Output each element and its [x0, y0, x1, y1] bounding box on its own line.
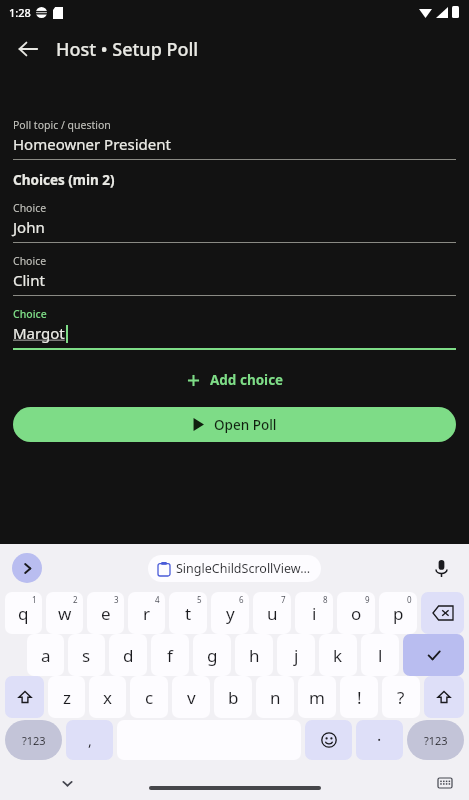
- staticText: ?123: [424, 733, 448, 748]
- button[interactable]: f: [151, 634, 189, 676]
- button[interactable]: Emoji: [305, 720, 352, 760]
- button[interactable]: l: [361, 634, 399, 676]
- staticText: Homeowner President: [13, 134, 171, 154]
- button[interactable]: r: [128, 592, 165, 634]
- button[interactable]: ?123: [5, 720, 62, 760]
- button[interactable]: e: [87, 592, 124, 634]
- staticText: Choice: [13, 254, 47, 268]
- button[interactable]: ?123: [407, 720, 464, 760]
- staticText: ,: [88, 731, 92, 750]
- button[interactable]: d: [109, 634, 147, 676]
- staticText: 6: [239, 594, 244, 605]
- staticText: h: [249, 644, 260, 667]
- staticText: l: [378, 644, 383, 667]
- button[interactable]: k: [319, 634, 357, 676]
- staticText: 1:28: [9, 5, 31, 20]
- button[interactable]: a: [27, 634, 64, 676]
- button[interactable]: s: [68, 634, 105, 676]
- button[interactable]: Voice input: [427, 554, 455, 582]
- staticText: John: [13, 217, 45, 237]
- button[interactable]: w: [46, 592, 83, 634]
- button[interactable]: !: [340, 676, 378, 718]
- staticText: Margot: [13, 323, 65, 343]
- staticText: p: [393, 602, 404, 625]
- button[interactable]: u: [253, 592, 291, 634]
- staticText: Open Poll: [214, 416, 277, 434]
- button[interactable]: m: [298, 676, 336, 718]
- button[interactable]: Open Poll: [13, 407, 456, 442]
- staticText: r: [143, 602, 151, 625]
- staticText: y: [226, 602, 235, 625]
- staticText: Clint: [13, 270, 45, 290]
- staticText: 0: [407, 594, 412, 605]
- staticText: q: [18, 602, 29, 625]
- staticText: Add choice: [210, 371, 284, 389]
- button[interactable]: ,: [66, 720, 113, 760]
- staticText: Host • Setup Poll: [56, 37, 199, 62]
- staticText: s: [82, 644, 91, 667]
- button[interactable]: h: [235, 634, 273, 676]
- button[interactable]: Backspace: [421, 592, 464, 634]
- staticText: i: [312, 602, 317, 625]
- staticText: ?: [397, 686, 405, 709]
- staticText: z: [63, 686, 71, 709]
- staticText: v: [187, 686, 196, 709]
- button[interactable]: o: [337, 592, 375, 634]
- button[interactable]: q: [5, 592, 42, 634]
- staticText: e: [101, 602, 111, 625]
- staticText: w: [58, 602, 72, 625]
- button[interactable]: v: [172, 676, 210, 718]
- staticText: !: [357, 686, 362, 709]
- staticText: 5: [197, 594, 202, 605]
- staticText: a: [41, 644, 51, 667]
- staticText: n: [270, 686, 281, 709]
- staticText: g: [207, 644, 218, 667]
- staticText: Choices (min 2): [13, 171, 115, 189]
- staticText: 8: [323, 594, 328, 605]
- staticText: ?123: [22, 733, 46, 748]
- button[interactable]: j: [277, 634, 315, 676]
- staticText: 1: [32, 594, 37, 605]
- staticText: 2: [73, 594, 78, 605]
- button[interactable]: i: [295, 592, 333, 634]
- button[interactable]: Shift: [5, 676, 44, 718]
- button[interactable]: x: [89, 676, 126, 718]
- button[interactable]: Shift: [424, 676, 464, 718]
- button[interactable]: b: [214, 676, 252, 718]
- staticText: o: [351, 602, 362, 625]
- button[interactable]: n: [256, 676, 294, 718]
- staticText: Choice: [13, 307, 47, 321]
- button[interactable]: z: [48, 676, 85, 718]
- staticText: b: [228, 686, 239, 709]
- button[interactable]: c: [130, 676, 168, 718]
- staticText: 4: [155, 594, 160, 605]
- button[interactable]: Add choice: [13, 363, 456, 397]
- staticText: ·: [377, 729, 382, 751]
- staticText: t: [185, 602, 192, 625]
- button[interactable]: ?: [382, 676, 420, 718]
- button[interactable]: Enter: [403, 634, 464, 676]
- staticText: SingleChildScrollView…: [176, 560, 311, 577]
- staticText: f: [167, 644, 173, 667]
- button[interactable]: Hide keyboard: [234, 770, 260, 796]
- staticText: 7: [281, 594, 286, 605]
- button[interactable]: ·: [356, 720, 403, 760]
- button[interactable]: p: [379, 592, 417, 634]
- staticText: Poll topic / question: [13, 118, 111, 132]
- staticText: Choice: [13, 201, 47, 215]
- button[interactable]: Back: [6, 27, 50, 71]
- staticText: x: [103, 686, 112, 709]
- button[interactable]: t: [169, 592, 207, 634]
- staticText: c: [145, 686, 154, 709]
- staticText: d: [123, 644, 134, 667]
- button[interactable]: Switch keyboard: [433, 771, 457, 795]
- button[interactable]: Expand suggestions: [12, 553, 42, 583]
- button[interactable]: SingleChildScrollView…: [158, 555, 311, 582]
- button[interactable]: g: [193, 634, 231, 676]
- button[interactable]: y: [211, 592, 249, 634]
- staticText: 9: [365, 594, 370, 605]
- staticText: m: [309, 686, 325, 709]
- staticText: u: [267, 602, 278, 625]
- staticText: 3: [114, 594, 119, 605]
